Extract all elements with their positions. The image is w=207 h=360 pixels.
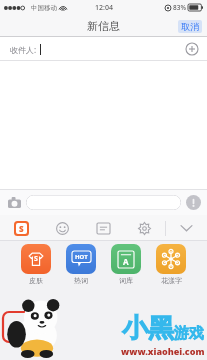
staticText: A [123,256,129,267]
staticText: 热词 [74,276,88,285]
button[interactable]: 花漾字 [156,244,186,285]
button[interactable] [26,195,181,210]
staticText: 皮肤 [29,276,43,285]
staticText: S [19,223,24,234]
button[interactable]: Camera [6,194,22,210]
staticText: www.xiaohei.com [121,345,205,357]
button[interactable]: Add contact [185,42,199,56]
button[interactable]: Phrases [83,215,124,241]
staticText: 中国移动 [31,4,57,12]
button[interactable]: A [111,244,141,285]
button[interactable]: Sogou input [0,215,42,241]
staticText: 12:04 [95,3,113,13]
staticText: 83% [173,3,186,12]
button[interactable]: Settings [124,215,165,241]
staticText: HOT [75,253,88,261]
staticText: 新信息 [87,19,120,33]
staticText: 词库 [119,276,133,285]
button[interactable]: HOT [66,244,96,285]
staticText: 花漾字 [161,276,182,285]
button[interactable]: Emoji [42,215,83,241]
button[interactable]: S [21,244,51,285]
staticText: 游戏 [174,324,204,343]
button[interactable]: Send [185,194,201,210]
button[interactable]: 取消 [178,20,202,33]
staticText: 小黑 [122,312,174,345]
staticText: S [34,254,38,264]
button[interactable]: Hide keyboard [166,215,207,241]
staticText: 取消 [181,21,199,32]
staticText: 收件人: [10,44,37,55]
